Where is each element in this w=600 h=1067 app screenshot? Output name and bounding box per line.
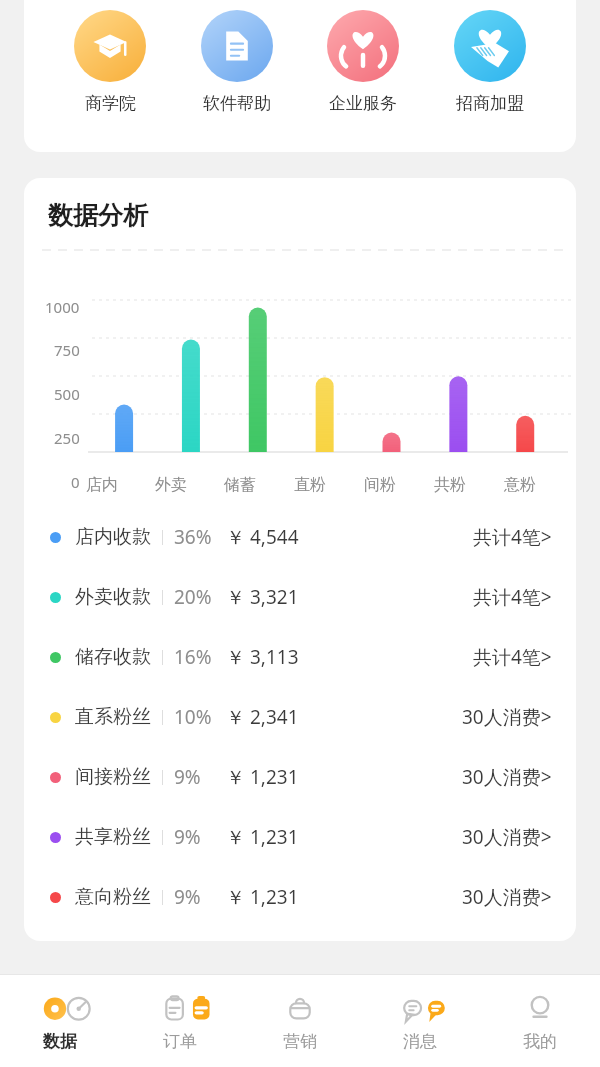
staticText: 企业服务: [329, 93, 397, 114]
staticText: 36%: [174, 524, 226, 550]
button[interactable]: 软件帮助: [193, 6, 281, 118]
staticText: ￥ 3,113: [226, 644, 473, 670]
staticText: ￥ 2,341: [226, 704, 462, 730]
staticText: 招商加盟: [456, 93, 524, 114]
staticText: 消息: [403, 1031, 437, 1052]
staticText: ￥ 4,544: [226, 524, 473, 550]
staticText: 间接粉丝: [75, 765, 151, 789]
button[interactable]: Messages: [360, 975, 480, 1067]
staticText: ￥ 1,231: [226, 884, 462, 910]
staticText: ￥ 1,231: [226, 824, 462, 850]
staticText: 30人消费>: [462, 824, 552, 850]
staticText: 9%: [174, 824, 226, 850]
staticText: 数据: [43, 1031, 77, 1052]
staticText: 共计4笔>: [473, 524, 552, 550]
button[interactable]: 共享粉丝: [24, 807, 576, 867]
staticText: 直粉: [294, 475, 326, 495]
staticText: 共计4笔>: [473, 644, 552, 670]
staticText: ￥ 3,321: [226, 584, 473, 610]
staticText: 20%: [174, 584, 226, 610]
button[interactable]: 意向粉丝: [24, 867, 576, 927]
staticText: 1000: [45, 297, 80, 317]
staticText: 250: [54, 428, 80, 448]
staticText: 30人消费>: [462, 884, 552, 910]
button[interactable]: 直系粉丝: [24, 687, 576, 747]
staticText: 外卖收款: [75, 585, 151, 609]
button[interactable]: 商学院: [66, 6, 154, 118]
staticText: 订单: [163, 1031, 197, 1052]
staticText: 9%: [174, 884, 226, 910]
button[interactable]: Marketing: [240, 975, 360, 1067]
staticText: 共享粉丝: [75, 825, 151, 849]
button[interactable]: 招商加盟: [446, 6, 534, 118]
staticText: 商学院: [85, 93, 136, 114]
staticText: 30人消费>: [462, 764, 552, 790]
staticText: 储蓄: [224, 475, 256, 495]
button[interactable]: Orders: [120, 975, 240, 1067]
staticText: 9%: [174, 764, 226, 790]
staticText: 我的: [523, 1031, 557, 1052]
button[interactable]: 间接粉丝: [24, 747, 576, 807]
staticText: ￥ 1,231: [226, 764, 462, 790]
staticText: 共计4笔>: [473, 584, 552, 610]
button[interactable]: Data: [0, 975, 120, 1067]
staticText: 16%: [174, 644, 226, 670]
staticText: 30人消费>: [462, 704, 552, 730]
staticText: 数据分析: [48, 200, 148, 231]
staticText: 共粉: [434, 475, 466, 495]
staticText: 储存收款: [75, 645, 151, 669]
staticText: 店内收款: [75, 525, 151, 549]
staticText: 外卖: [155, 475, 187, 495]
staticText: 750: [54, 340, 80, 360]
button[interactable]: 企业服务: [319, 6, 407, 118]
staticText: 10%: [174, 704, 226, 730]
staticText: 意粉: [504, 475, 536, 495]
button[interactable]: 储存收款: [24, 627, 576, 687]
button[interactable]: 外卖收款: [24, 567, 576, 627]
staticText: 间粉: [364, 475, 396, 495]
staticText: 意向粉丝: [75, 885, 151, 909]
staticText: 500: [54, 384, 80, 404]
button[interactable]: 店内收款: [24, 507, 576, 567]
button[interactable]: Profile: [480, 975, 600, 1067]
staticText: 软件帮助: [203, 93, 271, 114]
staticText: 营销: [283, 1031, 317, 1052]
staticText: 店内: [86, 475, 118, 495]
staticText: 0: [71, 472, 80, 492]
staticText: 直系粉丝: [75, 705, 151, 729]
